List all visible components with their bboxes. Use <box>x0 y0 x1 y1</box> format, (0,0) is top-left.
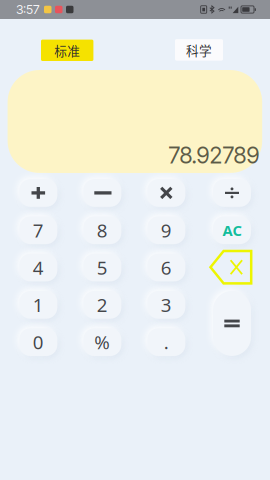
button[interactable]: % <box>83 328 121 356</box>
staticText: 3:57 <box>16 2 40 17</box>
button[interactable]: Subtract <box>83 179 121 207</box>
staticText: . <box>164 330 169 354</box>
button[interactable]: 4 <box>19 254 57 281</box>
staticText: 8 <box>97 218 108 243</box>
button[interactable]: 7 <box>19 216 57 244</box>
staticText: % <box>94 330 110 354</box>
staticText: 7 <box>33 218 44 243</box>
button[interactable]: Multiply <box>147 179 185 207</box>
staticText: 2 <box>97 292 108 317</box>
staticText: 0 <box>33 330 44 354</box>
button[interactable]: Divide <box>213 179 251 207</box>
button[interactable]: AC <box>213 216 251 244</box>
staticText: 3 <box>161 292 172 317</box>
button[interactable]: 5 <box>83 254 121 281</box>
button[interactable]: 3 <box>147 291 185 319</box>
button[interactable]: 8 <box>83 216 121 244</box>
button[interactable]: . <box>147 328 185 356</box>
staticText: 1 <box>33 292 44 317</box>
staticText: 4 <box>33 255 44 280</box>
button[interactable]: Add <box>19 179 57 207</box>
staticText: 6 <box>161 255 172 280</box>
button[interactable]: 2 <box>83 291 121 319</box>
button[interactable]: 科学 <box>175 39 223 61</box>
staticText: 标准 <box>54 41 80 59</box>
staticText: 78.92789 <box>168 142 259 169</box>
button[interactable]: Equals <box>213 291 251 356</box>
staticText: 5 <box>97 255 108 280</box>
staticText: 科学 <box>186 41 212 59</box>
button[interactable]: 1 <box>19 291 57 319</box>
button[interactable]: Delete <box>209 250 252 285</box>
button[interactable]: 标准 <box>41 40 93 61</box>
button[interactable]: 9 <box>147 216 185 244</box>
button[interactable]: 0 <box>19 328 57 356</box>
button[interactable]: 6 <box>147 254 185 281</box>
staticText: 9 <box>161 218 172 243</box>
staticText: AC <box>222 220 241 240</box>
